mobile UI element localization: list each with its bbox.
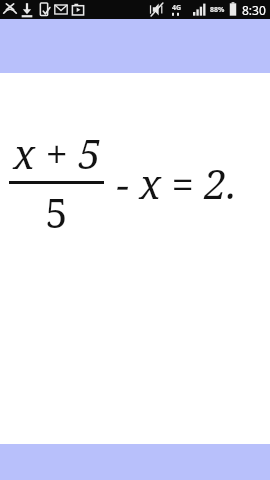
staticText: x + 5 (13, 126, 101, 180)
staticText: 8:30 (242, 2, 266, 18)
staticText: 4G (172, 3, 182, 13)
staticText: − x = 2. (106, 156, 237, 210)
staticText: 5 (45, 185, 68, 239)
staticText: 88% (210, 5, 225, 15)
button[interactable]: x + 5 (9, 126, 237, 239)
